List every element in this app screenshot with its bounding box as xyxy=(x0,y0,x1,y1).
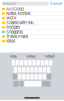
staticText: noted xyxy=(45,54,54,58)
button[interactable]: Key xyxy=(20,60,23,65)
button[interactable]: Key xyxy=(34,67,38,72)
button[interactable]: Shift xyxy=(13,74,17,79)
staticText: Cancel xyxy=(50,1,62,6)
button[interactable]: Key xyxy=(16,60,19,65)
staticText: note xyxy=(10,54,17,58)
button[interactable]: Key xyxy=(45,60,48,65)
button[interactable]: Ideas xyxy=(0,39,64,44)
staticText: Recipes xyxy=(6,25,20,30)
button[interactable]: Shopping xyxy=(0,30,64,34)
staticText: All iCloud xyxy=(6,6,23,11)
button[interactable]: Notes Archive xyxy=(0,11,64,16)
button[interactable]: All iCloud xyxy=(0,7,64,11)
button[interactable]: Key xyxy=(30,67,34,72)
button[interactable]: Key xyxy=(18,74,21,79)
button[interactable]: Work xyxy=(0,16,64,21)
button[interactable]: Delete xyxy=(47,74,51,79)
staticText: Work xyxy=(6,16,16,20)
button[interactable]: Search xyxy=(2,2,49,6)
button[interactable]: Key xyxy=(26,67,30,72)
staticText: notes xyxy=(26,54,35,58)
button[interactable]: Key xyxy=(12,60,15,65)
button[interactable]: Key xyxy=(38,74,42,79)
button[interactable]: Shared with You xyxy=(0,21,64,25)
button[interactable]: Key xyxy=(38,67,42,72)
staticText: Travel Plans xyxy=(6,34,28,39)
staticText: Shopping xyxy=(6,29,22,34)
button[interactable]: Key xyxy=(22,74,25,79)
button[interactable]: Key xyxy=(26,74,30,79)
button[interactable]: Key xyxy=(43,74,46,79)
button[interactable]: Emoji xyxy=(20,81,24,86)
button[interactable]: Key xyxy=(36,60,40,65)
button[interactable]: Key xyxy=(28,60,32,65)
staticText: Shared with You xyxy=(6,20,33,25)
button[interactable]: Key xyxy=(30,74,34,79)
button[interactable]: Recipes xyxy=(0,25,64,30)
staticText: Search xyxy=(5,1,16,6)
button[interactable]: Key xyxy=(32,60,36,65)
button[interactable]: Travel Plans xyxy=(0,34,64,39)
button[interactable]: Cancel xyxy=(50,1,62,6)
button[interactable]: Key xyxy=(41,60,44,65)
staticText: Ideas xyxy=(6,39,15,43)
button[interactable]: Key xyxy=(34,74,38,79)
button[interactable]: Key xyxy=(24,60,27,65)
button[interactable]: Key xyxy=(49,60,52,65)
staticText: Notes Archive xyxy=(6,11,30,16)
button[interactable]: space xyxy=(24,81,41,86)
